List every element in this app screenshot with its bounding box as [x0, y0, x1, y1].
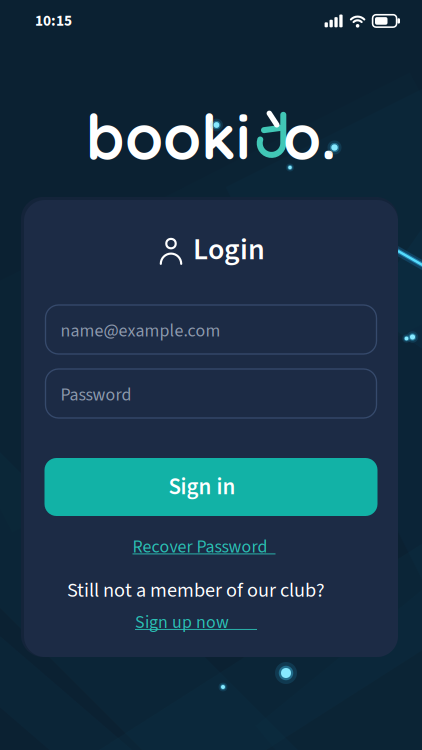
- staticText: Password: [60, 382, 131, 408]
- staticText: booki: [86, 98, 250, 175]
- staticText: Login: [193, 229, 265, 271]
- button[interactable]: Recover Password: [132, 534, 275, 560]
- staticText: o.: [283, 98, 336, 175]
- staticText: Recover Password: [132, 534, 275, 560]
- staticText: 10:15: [35, 10, 72, 32]
- button[interactable]: Password: [45, 369, 376, 418]
- staticText: Still not a member of our club?: [67, 576, 325, 605]
- button[interactable]: name@example.com: [45, 305, 376, 354]
- button[interactable]: Sign up now: [135, 610, 257, 635]
- button[interactable]: Sign in: [44, 458, 377, 516]
- staticText: name@example.com: [60, 318, 220, 344]
- staticText: Sign in: [168, 471, 235, 503]
- staticText: Sign up now: [135, 610, 257, 635]
